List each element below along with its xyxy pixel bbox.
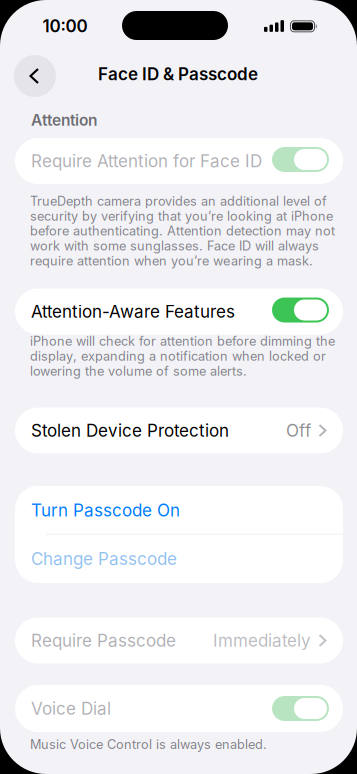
- staticText: Require Attention for Face ID: [31, 151, 262, 171]
- button[interactable]: Change Passcode: [15, 535, 343, 583]
- staticText: display, expanding a notification when l…: [30, 349, 326, 364]
- button[interactable]: Turn Passcode On: [15, 486, 343, 534]
- staticText: Attention: [31, 111, 97, 129]
- staticText: Off: [286, 420, 311, 441]
- staticText: 10:00: [42, 16, 87, 36]
- staticText: Change Passcode: [31, 549, 177, 569]
- button[interactable]: Require Passcode: [15, 617, 343, 663]
- staticText: TrueDepth camera provides an additional …: [30, 193, 327, 208]
- staticText: Music Voice Control is always enabled.: [30, 737, 267, 752]
- staticText: work with some sunglasses. Face ID will …: [30, 238, 319, 253]
- staticText: Face ID & Passcode: [98, 64, 258, 84]
- button[interactable]: Require Attention for Face ID: [15, 138, 343, 184]
- staticText: Stolen Device Protection: [31, 420, 229, 441]
- button[interactable]: Attention-Aware Features: [15, 288, 343, 334]
- button[interactable]: [14, 55, 56, 97]
- staticText: iPhone will check for attention before d…: [30, 334, 335, 349]
- staticText: Immediately: [213, 630, 311, 651]
- staticText: require attention when you’re wearing a …: [30, 253, 313, 268]
- staticText: lowering the volume of some alerts.: [30, 364, 247, 379]
- staticText: Attention-Aware Features: [31, 301, 235, 322]
- staticText: Voice Dial: [31, 698, 111, 719]
- staticText: Turn Passcode On: [31, 500, 180, 520]
- button[interactable]: Stolen Device Protection: [15, 407, 343, 453]
- button[interactable]: Voice Dial: [15, 685, 343, 732]
- staticText: Require Passcode: [31, 630, 176, 651]
- staticText: security by verifying that you’re lookin…: [30, 208, 333, 223]
- staticText: before authenticating. Attention detecti…: [30, 223, 335, 238]
